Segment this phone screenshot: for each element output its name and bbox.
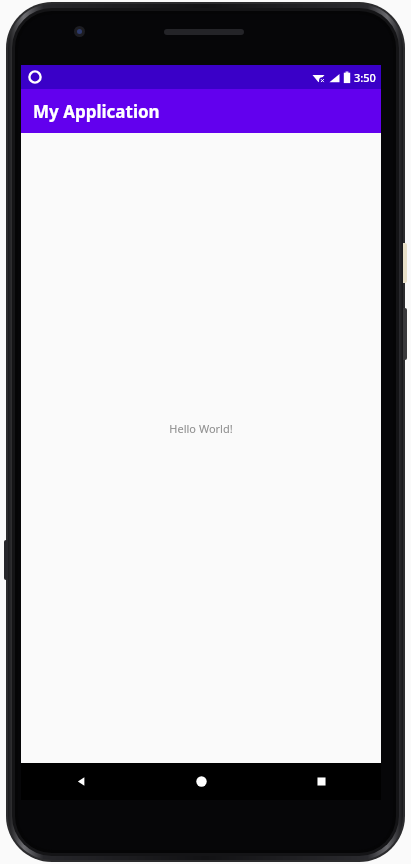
button[interactable]: Back xyxy=(21,763,141,800)
staticText: 3:50 xyxy=(354,70,376,85)
staticText: Hello World! xyxy=(169,421,233,436)
button[interactable]: Recent apps xyxy=(261,763,381,800)
staticText: My Application xyxy=(33,100,160,123)
button[interactable]: Home xyxy=(141,763,261,800)
